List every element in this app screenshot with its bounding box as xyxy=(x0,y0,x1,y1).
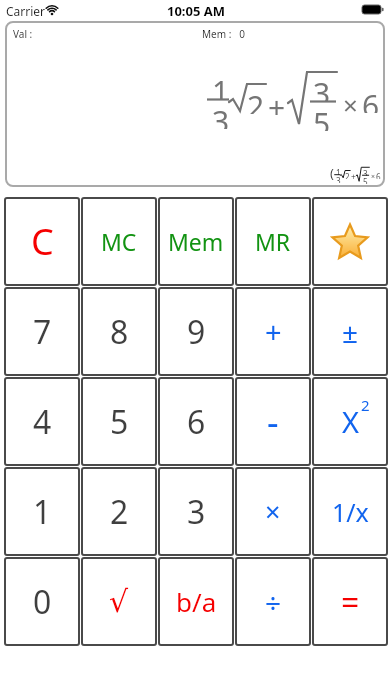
button[interactable] xyxy=(312,197,388,286)
button[interactable]: 2 xyxy=(81,467,157,556)
staticText: × xyxy=(343,87,358,115)
staticText: 3 xyxy=(187,490,206,534)
button[interactable]: 7 xyxy=(4,287,80,376)
button[interactable]: + xyxy=(235,287,311,376)
staticText: = xyxy=(341,580,360,624)
staticText: + xyxy=(265,312,282,351)
staticText: 10:05 AM xyxy=(167,2,226,19)
staticText: 6 xyxy=(362,85,380,113)
staticText: 0 xyxy=(33,580,52,624)
staticText: 1 xyxy=(336,167,341,175)
staticText: 3 xyxy=(363,168,368,176)
button[interactable]: Mem xyxy=(158,197,234,286)
staticText: C xyxy=(31,217,54,266)
staticText: X xyxy=(342,402,359,441)
staticText: 1/x xyxy=(332,495,369,529)
staticText: ( xyxy=(330,164,334,182)
button[interactable]: 0 xyxy=(4,557,80,646)
staticText: 2 xyxy=(345,171,350,179)
staticText: MC xyxy=(101,226,137,257)
button[interactable]: ÷ xyxy=(235,557,311,646)
button[interactable]: 4 xyxy=(4,377,80,466)
staticText: Carrier xyxy=(6,3,46,19)
staticText: 8 xyxy=(110,310,129,354)
staticText: 1 xyxy=(33,490,52,534)
staticText: ± xyxy=(342,313,359,351)
button[interactable]: MC xyxy=(81,197,157,286)
staticText: × xyxy=(265,493,281,530)
button[interactable]: 9 xyxy=(158,287,234,376)
staticText: 9 xyxy=(187,310,206,354)
staticText: - xyxy=(267,397,279,446)
button[interactable]: ± xyxy=(312,287,388,376)
button[interactable]: = xyxy=(312,557,388,646)
staticText: MR xyxy=(255,226,291,257)
staticText: b/a xyxy=(176,584,217,619)
staticText: + xyxy=(351,171,356,179)
staticText: 5 xyxy=(110,400,129,444)
staticText: 3 xyxy=(313,73,331,101)
staticText: 7 xyxy=(33,310,52,354)
staticText: √ xyxy=(109,584,129,619)
button[interactable]: × xyxy=(235,467,311,556)
button[interactable]: 6 xyxy=(158,377,234,466)
staticText: 2 xyxy=(247,86,265,114)
button[interactable]: 1/x xyxy=(312,467,388,556)
staticText: × xyxy=(371,171,376,179)
staticText: 3 xyxy=(212,101,230,129)
staticText: + xyxy=(268,87,286,115)
staticText: 2 xyxy=(361,395,370,415)
staticText: 4 xyxy=(33,400,52,444)
button[interactable]: 8 xyxy=(81,287,157,376)
staticText: Mem : 0 xyxy=(202,27,245,41)
button[interactable]: - xyxy=(235,377,311,466)
button[interactable]: 3 xyxy=(158,467,234,556)
button[interactable]: 1 xyxy=(4,467,80,556)
staticText: 2 xyxy=(110,490,129,534)
button[interactable]: b/a xyxy=(158,557,234,646)
button[interactable]: MR xyxy=(235,197,311,286)
staticText: Val : xyxy=(13,27,33,41)
button[interactable]: C xyxy=(4,197,80,286)
staticText: Mem xyxy=(168,226,224,257)
staticText: 5 xyxy=(363,176,368,184)
staticText: 6 xyxy=(187,400,206,444)
staticText: 6 xyxy=(376,171,381,179)
staticText: 3 xyxy=(336,175,341,183)
staticText: ÷ xyxy=(265,583,282,621)
button[interactable]: X xyxy=(312,377,388,466)
staticText: 5 xyxy=(313,103,331,131)
button[interactable]: 5 xyxy=(81,377,157,466)
button[interactable]: √ xyxy=(81,557,157,646)
staticText: 1 xyxy=(212,71,230,99)
